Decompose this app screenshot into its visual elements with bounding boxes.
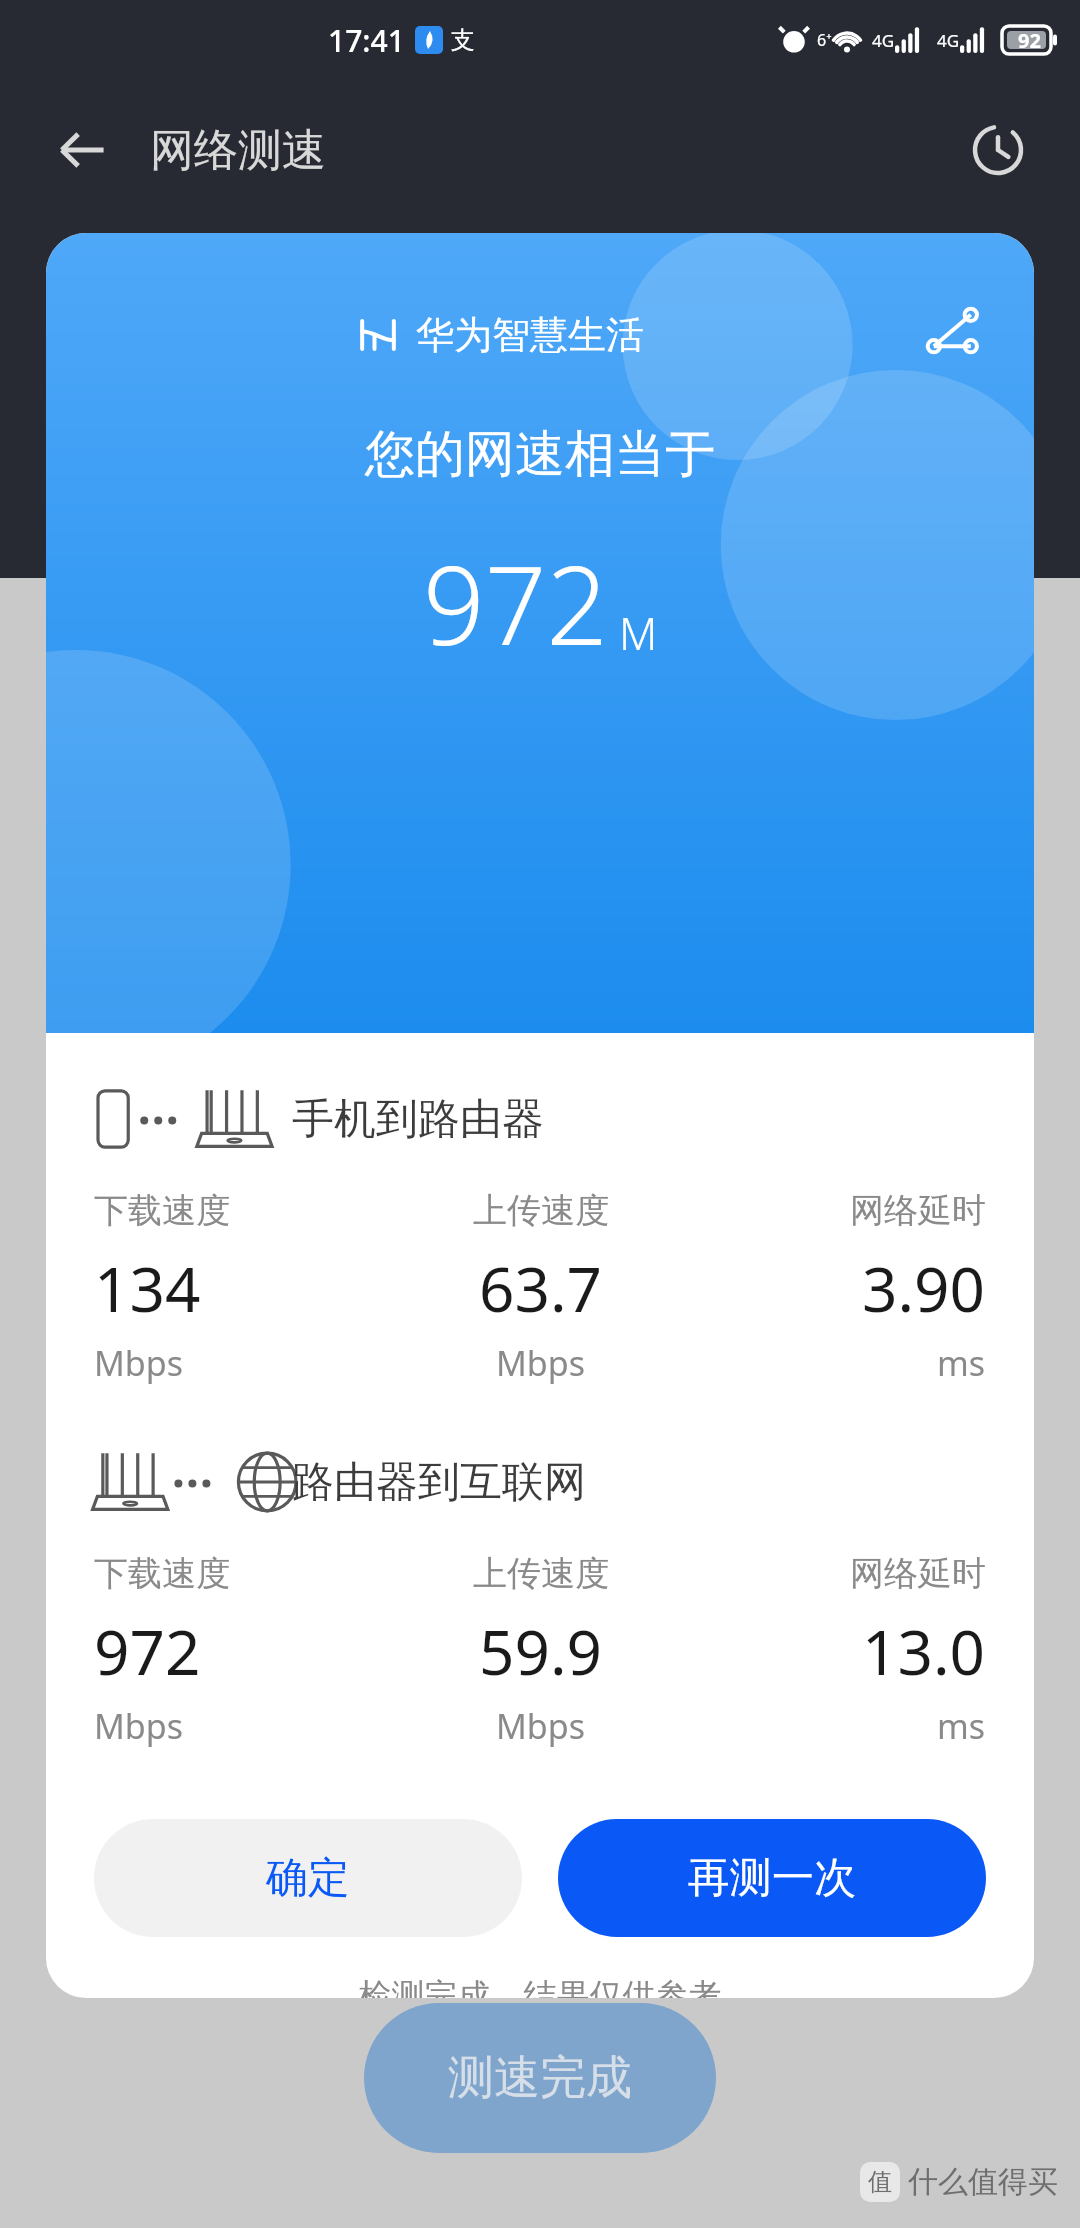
staticText: 确定 xyxy=(266,1852,350,1905)
staticText: Mbps xyxy=(496,1340,585,1386)
staticText: ms xyxy=(937,1703,986,1749)
staticText: 网络测速 xyxy=(150,123,326,178)
staticText: 92 xyxy=(1018,27,1041,54)
staticText: 测速完成 xyxy=(448,2049,632,2107)
button[interactable]: 确定 xyxy=(94,1819,522,1937)
staticText: 什么值得买 xyxy=(908,2163,1058,2201)
staticText: 63.7 xyxy=(479,1246,603,1330)
staticText: 134 xyxy=(94,1246,201,1330)
button[interactable]: 测速完成 xyxy=(364,2003,716,2153)
staticText: 华为智慧生活 xyxy=(416,311,644,359)
staticText: 检测完成，结果仅供参考 xyxy=(94,1975,986,1998)
staticText: 13.0 xyxy=(862,1609,986,1693)
staticText: 4G xyxy=(937,29,960,52)
staticText: Mbps xyxy=(94,1340,183,1386)
button[interactable]: Share xyxy=(914,295,994,375)
staticText: 6⁺ xyxy=(817,29,832,51)
staticText: Mbps xyxy=(94,1703,183,1749)
staticText: 972 xyxy=(686,420,789,502)
staticText: 支 xyxy=(451,25,475,55)
staticText: 您的网速相当于 xyxy=(365,423,715,486)
staticText: M xyxy=(619,603,658,663)
staticText: 值 xyxy=(868,2167,892,2197)
staticText: 下载速度 xyxy=(94,1189,230,1232)
staticText: 下载速度 xyxy=(94,1552,230,1595)
staticText: 972 xyxy=(423,530,609,677)
staticText: 上传速度 xyxy=(473,1552,609,1595)
button[interactable]: History xyxy=(956,108,1040,192)
button[interactable]: Back xyxy=(40,108,124,192)
staticText: 再测一次 xyxy=(688,1852,856,1905)
staticText: 网络延时 xyxy=(850,1552,986,1595)
staticText: 路由器到互联网 xyxy=(292,1456,586,1509)
staticText: 59.9 xyxy=(479,1609,603,1693)
staticText: 3.90 xyxy=(862,1246,986,1330)
staticText: ms xyxy=(937,1340,986,1386)
staticText: 972 xyxy=(94,1609,201,1693)
staticText: 网络延时 xyxy=(850,1189,986,1232)
button[interactable]: 再测一次 xyxy=(558,1819,986,1937)
staticText: 17:41 xyxy=(328,20,405,61)
staticText: 4G xyxy=(872,29,895,52)
staticText: 上传速度 xyxy=(473,1189,609,1232)
staticText: 手机到路由器 xyxy=(292,1093,544,1146)
staticText: 134 xyxy=(291,420,394,502)
staticText: Mbps xyxy=(496,1703,585,1749)
